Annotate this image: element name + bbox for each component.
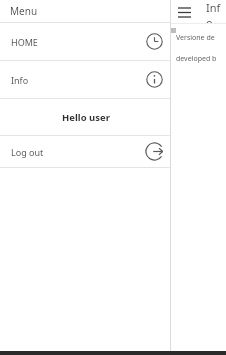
staticText: Log out xyxy=(11,146,44,158)
button[interactable]: Log out xyxy=(0,136,171,167)
staticText: Info xyxy=(11,74,29,86)
staticText: Hello user xyxy=(62,111,110,124)
button[interactable]: HOME xyxy=(0,23,171,60)
staticText: HOME xyxy=(11,36,38,48)
staticText: Menu xyxy=(10,4,38,18)
staticText: Info xyxy=(206,0,226,23)
staticText: developed b xyxy=(176,54,217,64)
staticText: Versione de xyxy=(176,33,215,43)
button[interactable]: Open navigation menu xyxy=(176,4,192,20)
button[interactable]: Info xyxy=(0,61,171,98)
